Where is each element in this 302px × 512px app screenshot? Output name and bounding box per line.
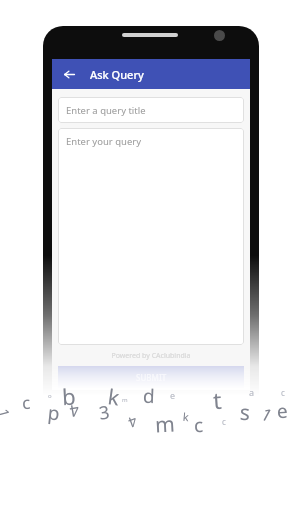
staticText: 4 [67, 399, 81, 423]
staticText: e [276, 398, 289, 424]
staticText: Powered by CAclubindia [58, 351, 244, 361]
staticText: Ask Query [90, 67, 144, 82]
staticText: m [154, 409, 176, 439]
staticText: c [281, 387, 285, 398]
staticText: 1 [0, 407, 15, 420]
staticText: o [48, 392, 52, 400]
staticText: b [61, 381, 77, 411]
staticText: s [239, 398, 252, 427]
staticText: t [212, 384, 223, 415]
staticText: e [170, 389, 176, 401]
button[interactable]: Enter a query title [58, 97, 244, 123]
staticText: c [21, 391, 32, 414]
staticText: 1 [257, 402, 277, 427]
button[interactable]: Enter your query [58, 128, 244, 345]
staticText: p [47, 399, 61, 426]
staticText: c [222, 416, 226, 427]
staticText: a [249, 386, 255, 398]
staticText: m [122, 396, 128, 404]
staticText: 4 [125, 412, 140, 433]
staticText: c [193, 412, 204, 438]
staticText: Enter your query [66, 135, 142, 148]
staticText: SUBMIT [136, 372, 167, 383]
button[interactable]: SUBMIT [58, 366, 244, 388]
staticText: 3 [97, 399, 112, 426]
staticText: k [106, 382, 122, 413]
staticText: k [182, 409, 190, 424]
staticText: d [142, 383, 155, 409]
staticText: Enter a query title [66, 104, 146, 117]
button[interactable]: Back [58, 63, 80, 85]
